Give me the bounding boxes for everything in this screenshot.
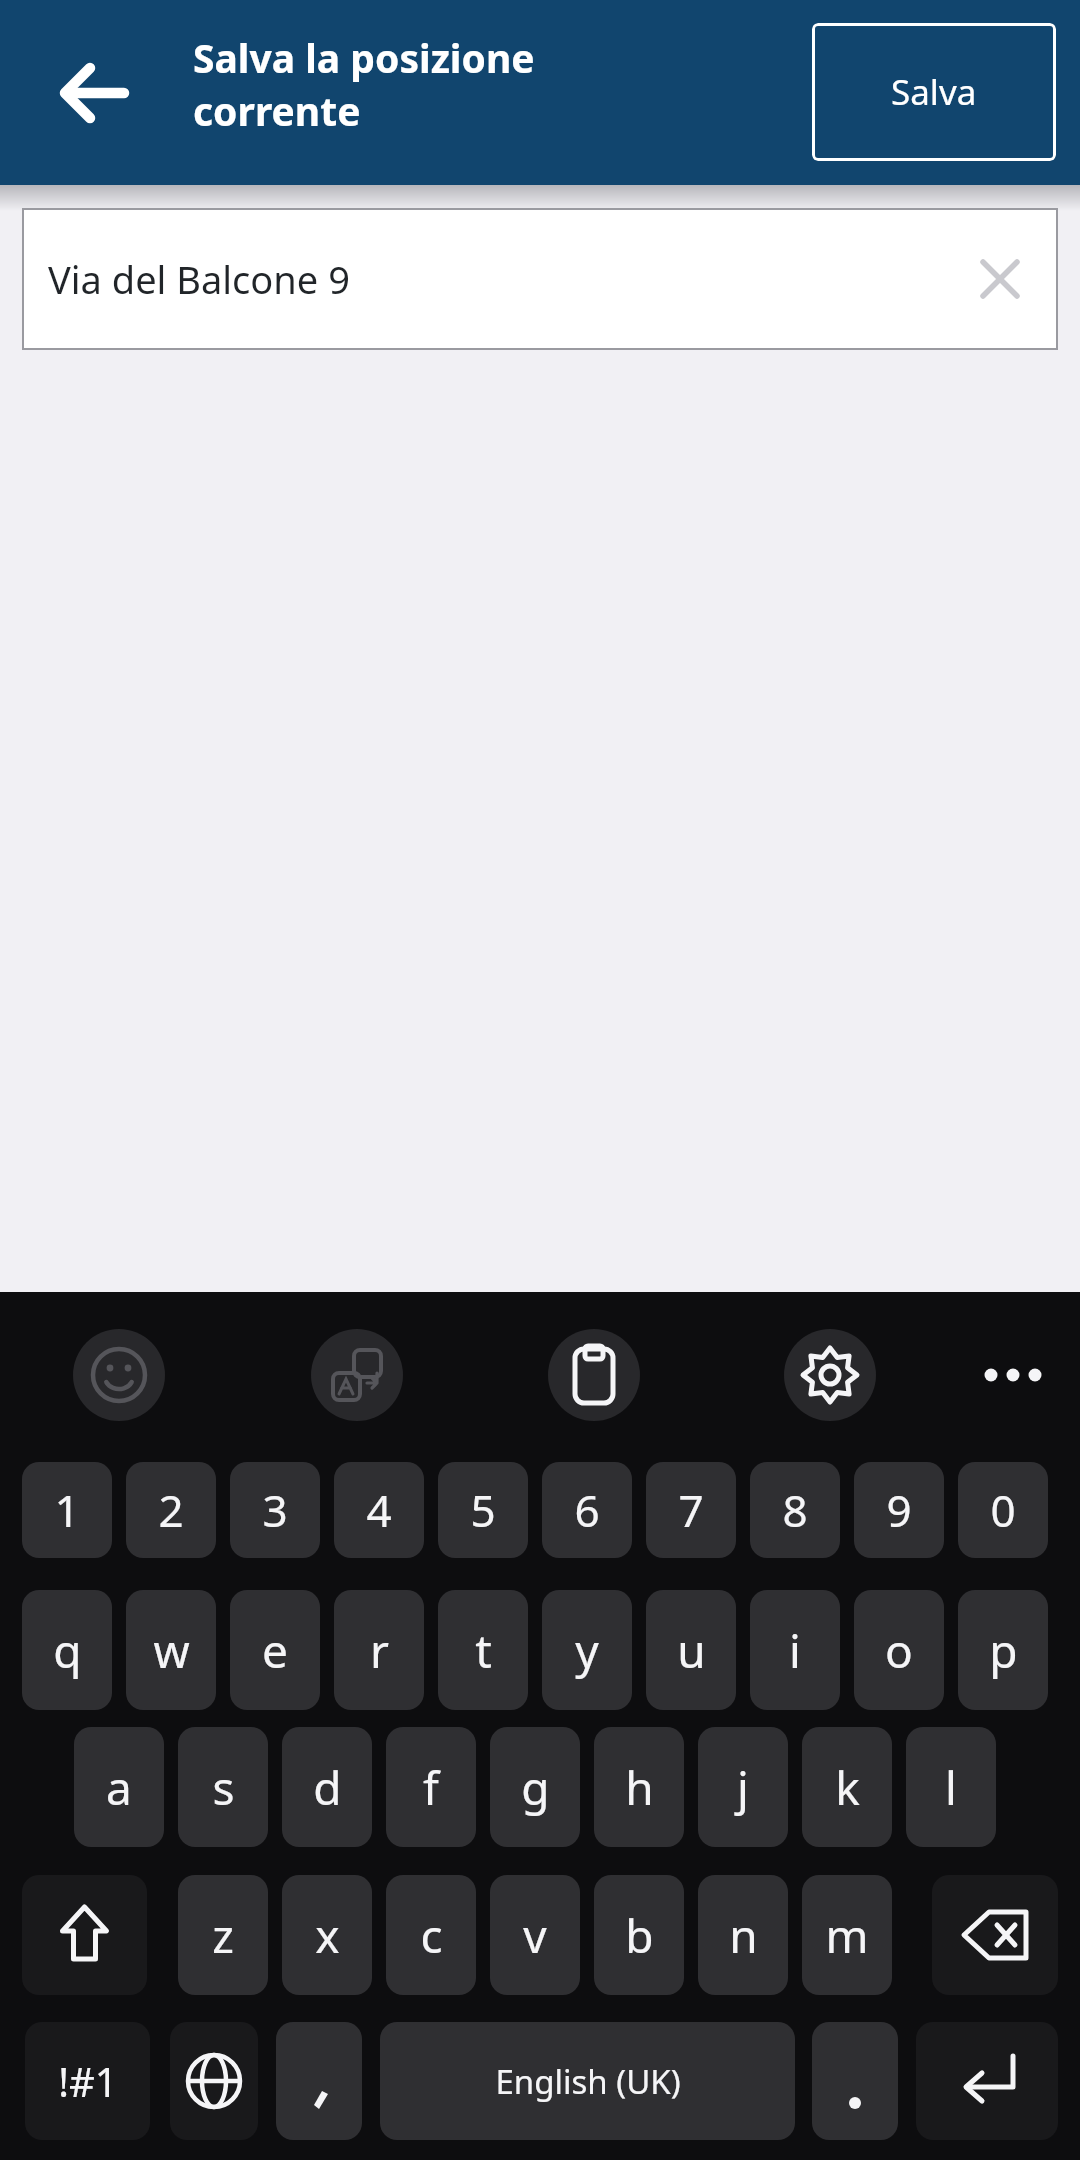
button[interactable]: z	[178, 1875, 268, 1995]
button[interactable]: Enter	[916, 2022, 1058, 2140]
staticText: r	[370, 1619, 389, 1682]
staticText: 6	[574, 1480, 600, 1540]
button[interactable]: y	[542, 1590, 632, 1710]
button[interactable]: 0	[958, 1462, 1048, 1558]
button[interactable]: 4	[334, 1462, 424, 1558]
staticText: f	[423, 1756, 439, 1819]
button[interactable]: Back	[38, 36, 152, 150]
staticText: u	[677, 1619, 706, 1682]
staticText: y	[575, 1619, 599, 1682]
staticText: 4	[366, 1480, 392, 1540]
button[interactable]: English (UK)	[380, 2022, 795, 2140]
button[interactable]: Salva	[812, 23, 1056, 161]
button[interactable]: Backspace	[932, 1875, 1058, 1995]
button[interactable]: Change language	[170, 2022, 258, 2140]
staticText: 3	[262, 1480, 288, 1540]
button[interactable]: w	[126, 1590, 216, 1710]
button[interactable]: c	[386, 1875, 476, 1995]
staticText: a	[106, 1756, 132, 1819]
button[interactable]: m	[802, 1875, 892, 1995]
button[interactable]: l	[906, 1727, 996, 1847]
button[interactable]: Clipboard	[549, 1312, 639, 1438]
staticText: !#1	[58, 2054, 118, 2108]
staticText: Salva	[891, 68, 977, 116]
staticText: d	[313, 1756, 342, 1819]
staticText: 0	[990, 1480, 1016, 1540]
staticText: e	[262, 1619, 288, 1682]
button[interactable]: h	[594, 1727, 684, 1847]
button[interactable]: u	[646, 1590, 736, 1710]
button[interactable]: v	[490, 1875, 580, 1995]
button[interactable]: t	[438, 1590, 528, 1710]
staticText: w	[153, 1619, 190, 1682]
button[interactable]: i	[750, 1590, 840, 1710]
staticText: o	[885, 1619, 913, 1682]
button[interactable]: b	[594, 1875, 684, 1995]
staticText: 5	[470, 1480, 496, 1540]
button[interactable]: Emoji	[74, 1312, 164, 1438]
button[interactable]: 8	[750, 1462, 840, 1558]
button[interactable]: s	[178, 1727, 268, 1847]
staticText: Via del Balcone 9	[48, 253, 350, 305]
staticText: 1	[54, 1480, 80, 1540]
button[interactable]: 1	[22, 1462, 112, 1558]
staticText: i	[789, 1619, 801, 1682]
button[interactable]: Translate	[312, 1312, 402, 1438]
staticText: q	[53, 1619, 82, 1682]
button[interactable]: r	[334, 1590, 424, 1710]
button[interactable]: a	[74, 1727, 164, 1847]
staticText: p	[989, 1619, 1018, 1682]
staticText: n	[729, 1904, 758, 1967]
staticText: s	[212, 1756, 235, 1819]
staticText: g	[521, 1756, 550, 1819]
button[interactable]: j	[698, 1727, 788, 1847]
staticText: b	[625, 1904, 654, 1967]
button[interactable]: Clear text	[960, 239, 1040, 319]
button[interactable]: More options	[968, 1312, 1058, 1438]
button[interactable]: q	[22, 1590, 112, 1710]
button[interactable]: Via del Balcone 9	[22, 208, 1058, 350]
button[interactable]: k	[802, 1727, 892, 1847]
staticText: m	[825, 1904, 869, 1967]
button[interactable]: n	[698, 1875, 788, 1995]
staticText: x	[315, 1904, 340, 1967]
staticText: 8	[782, 1480, 808, 1540]
staticText: t	[475, 1619, 492, 1682]
staticText: 2	[158, 1480, 184, 1540]
button[interactable]: o	[854, 1590, 944, 1710]
staticText: English (UK)	[495, 2059, 681, 2104]
button[interactable]: 7	[646, 1462, 736, 1558]
staticText: 9	[886, 1480, 912, 1540]
button[interactable]: !#1	[25, 2022, 150, 2140]
staticText: 7	[678, 1480, 704, 1540]
button[interactable]: Period	[812, 2022, 898, 2140]
button[interactable]: p	[958, 1590, 1048, 1710]
staticText: c	[420, 1904, 443, 1967]
button[interactable]: Comma	[276, 2022, 362, 2140]
button[interactable]: x	[282, 1875, 372, 1995]
button[interactable]: e	[230, 1590, 320, 1710]
button[interactable]: 6	[542, 1462, 632, 1558]
staticText: h	[625, 1756, 654, 1819]
button[interactable]: 9	[854, 1462, 944, 1558]
button[interactable]: 2	[126, 1462, 216, 1558]
button[interactable]: g	[490, 1727, 580, 1847]
button[interactable]: 3	[230, 1462, 320, 1558]
staticText: l	[945, 1756, 957, 1819]
staticText: v	[523, 1904, 547, 1967]
button[interactable]: Settings	[785, 1312, 875, 1438]
staticText: k	[835, 1756, 860, 1819]
button[interactable]: f	[386, 1727, 476, 1847]
staticText: Salva la posizione	[193, 31, 535, 84]
staticText: corrente	[193, 84, 361, 137]
staticText: z	[212, 1904, 234, 1967]
button[interactable]: Shift	[22, 1875, 147, 1995]
button[interactable]: d	[282, 1727, 372, 1847]
staticText: j	[737, 1756, 749, 1819]
button[interactable]: 5	[438, 1462, 528, 1558]
